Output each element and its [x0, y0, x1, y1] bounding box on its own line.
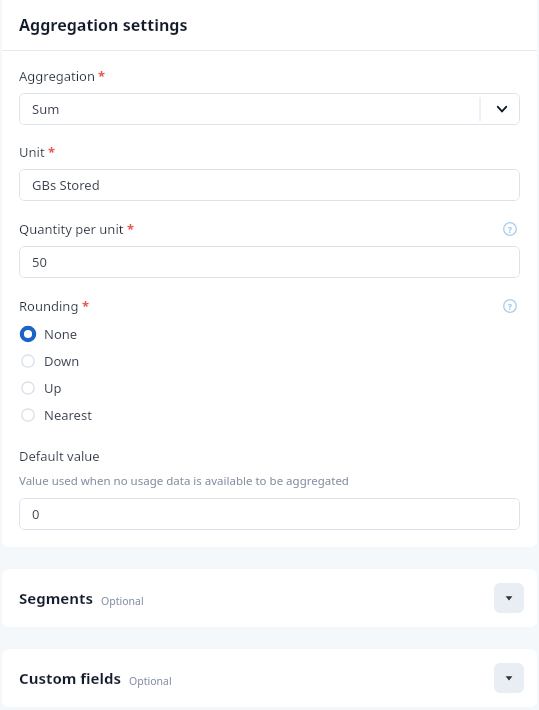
- button[interactable]: GBs Stored: [19, 169, 520, 201]
- staticText: Value used when no usage data is availab…: [19, 473, 349, 489]
- staticText: None: [44, 325, 78, 343]
- staticText: *: [98, 67, 106, 85]
- staticText: Optional: [101, 594, 144, 608]
- button[interactable]: Nearest: [19, 401, 520, 428]
- staticText: Rounding: [19, 297, 79, 315]
- button[interactable]: 50: [19, 246, 520, 278]
- staticText: Aggregation settings: [19, 14, 188, 36]
- button[interactable]: Sum: [19, 93, 520, 125]
- button[interactable]: 0: [19, 498, 520, 530]
- button[interactable]: Expand Custom fields: [494, 663, 524, 693]
- staticText: Aggregation: [19, 67, 95, 85]
- staticText: *: [82, 297, 90, 315]
- staticText: Custom fields: [19, 668, 122, 688]
- button[interactable]: Help about rounding: [500, 296, 520, 316]
- staticText: Optional: [129, 674, 172, 688]
- staticText: Nearest: [44, 406, 92, 424]
- staticText: *: [127, 220, 135, 238]
- staticText: Quantity per unit: [19, 220, 124, 238]
- staticText: 50: [32, 253, 47, 271]
- button[interactable]: None: [19, 320, 520, 347]
- staticText: *: [48, 143, 56, 161]
- staticText: Unit: [19, 143, 45, 161]
- button[interactable]: Expand Segments: [494, 583, 524, 613]
- staticText: Default value: [19, 447, 100, 465]
- staticText: ?: [508, 301, 512, 312]
- button[interactable]: Up: [19, 374, 520, 401]
- staticText: Down: [44, 352, 80, 370]
- staticText: Up: [44, 379, 62, 397]
- staticText: Sum: [32, 100, 60, 118]
- button[interactable]: Custom fields: [2, 649, 537, 707]
- staticText: GBs Stored: [32, 176, 100, 194]
- button[interactable]: Segments: [2, 569, 537, 627]
- staticText: Segments: [19, 588, 94, 608]
- staticText: ?: [508, 224, 512, 235]
- button[interactable]: Down: [19, 347, 520, 374]
- staticText: 0: [32, 505, 40, 523]
- button[interactable]: Help about quantity per unit: [500, 219, 520, 239]
